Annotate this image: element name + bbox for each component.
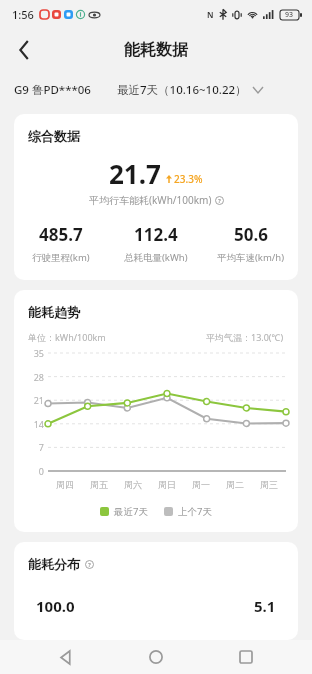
staticText: 周五 [90,479,108,490]
staticText: G9 鲁PD***06 [14,82,91,98]
staticText: 综合数据 [28,128,80,144]
staticText: 周日 [158,479,176,490]
button[interactable]: Back [5,31,43,69]
staticText: 485.7 [39,223,83,246]
staticText: 100.0 [36,596,75,616]
staticText: 周六 [124,479,142,490]
button[interactable]: Back [50,641,82,673]
staticText: 行驶里程(km) [32,251,90,264]
staticText: ? [88,561,91,569]
staticText: 28 [20,371,44,383]
staticText: 35 [20,347,44,359]
staticText: 周二 [226,479,244,490]
staticText: 21 [20,394,44,406]
staticText: 周三 [260,479,278,490]
button[interactable]: G9 鲁PD***06 [14,82,91,98]
staticText: 周四 [56,479,74,490]
staticText: 0 [20,465,44,477]
staticText: 能耗数据 [124,40,188,60]
staticText: 7 [20,441,44,453]
button[interactable]: Home [140,641,172,673]
staticText: 112.4 [134,223,178,246]
staticText: 5.1 [254,596,276,616]
staticText: 单位：kWh/100km [28,331,106,343]
staticText: 能耗分布 [28,556,80,572]
staticText: 总耗电量(kWh) [124,251,188,264]
staticText: 能耗趋势 [28,304,80,320]
button[interactable]: 最近7天（10.16~10.22） [117,82,263,98]
staticText: 最近7天（10.16~10.22） [117,82,247,98]
staticText: 平均气温：13.0(℃) [206,331,284,343]
staticText: 23.3% [174,172,203,186]
staticText: ? [218,197,221,205]
button[interactable]: Recent apps [230,641,262,673]
staticText: 93 [285,10,294,20]
staticText: 1:56 [12,7,34,22]
staticText: 21.7 [109,156,161,191]
staticText: 50.6 [234,223,268,246]
staticText: 上个7天 [178,505,212,518]
staticText: 14 [20,418,44,430]
staticText: 平均行车能耗(kWh/100km) [89,193,212,207]
staticText: 最近7天 [114,505,148,518]
button[interactable]: 最近7天 [100,505,148,518]
staticText: N [207,9,214,20]
staticText: 周一 [192,479,210,490]
staticText: 平均车速(km/h) [217,251,285,264]
button[interactable]: 上个7天 [164,505,212,518]
